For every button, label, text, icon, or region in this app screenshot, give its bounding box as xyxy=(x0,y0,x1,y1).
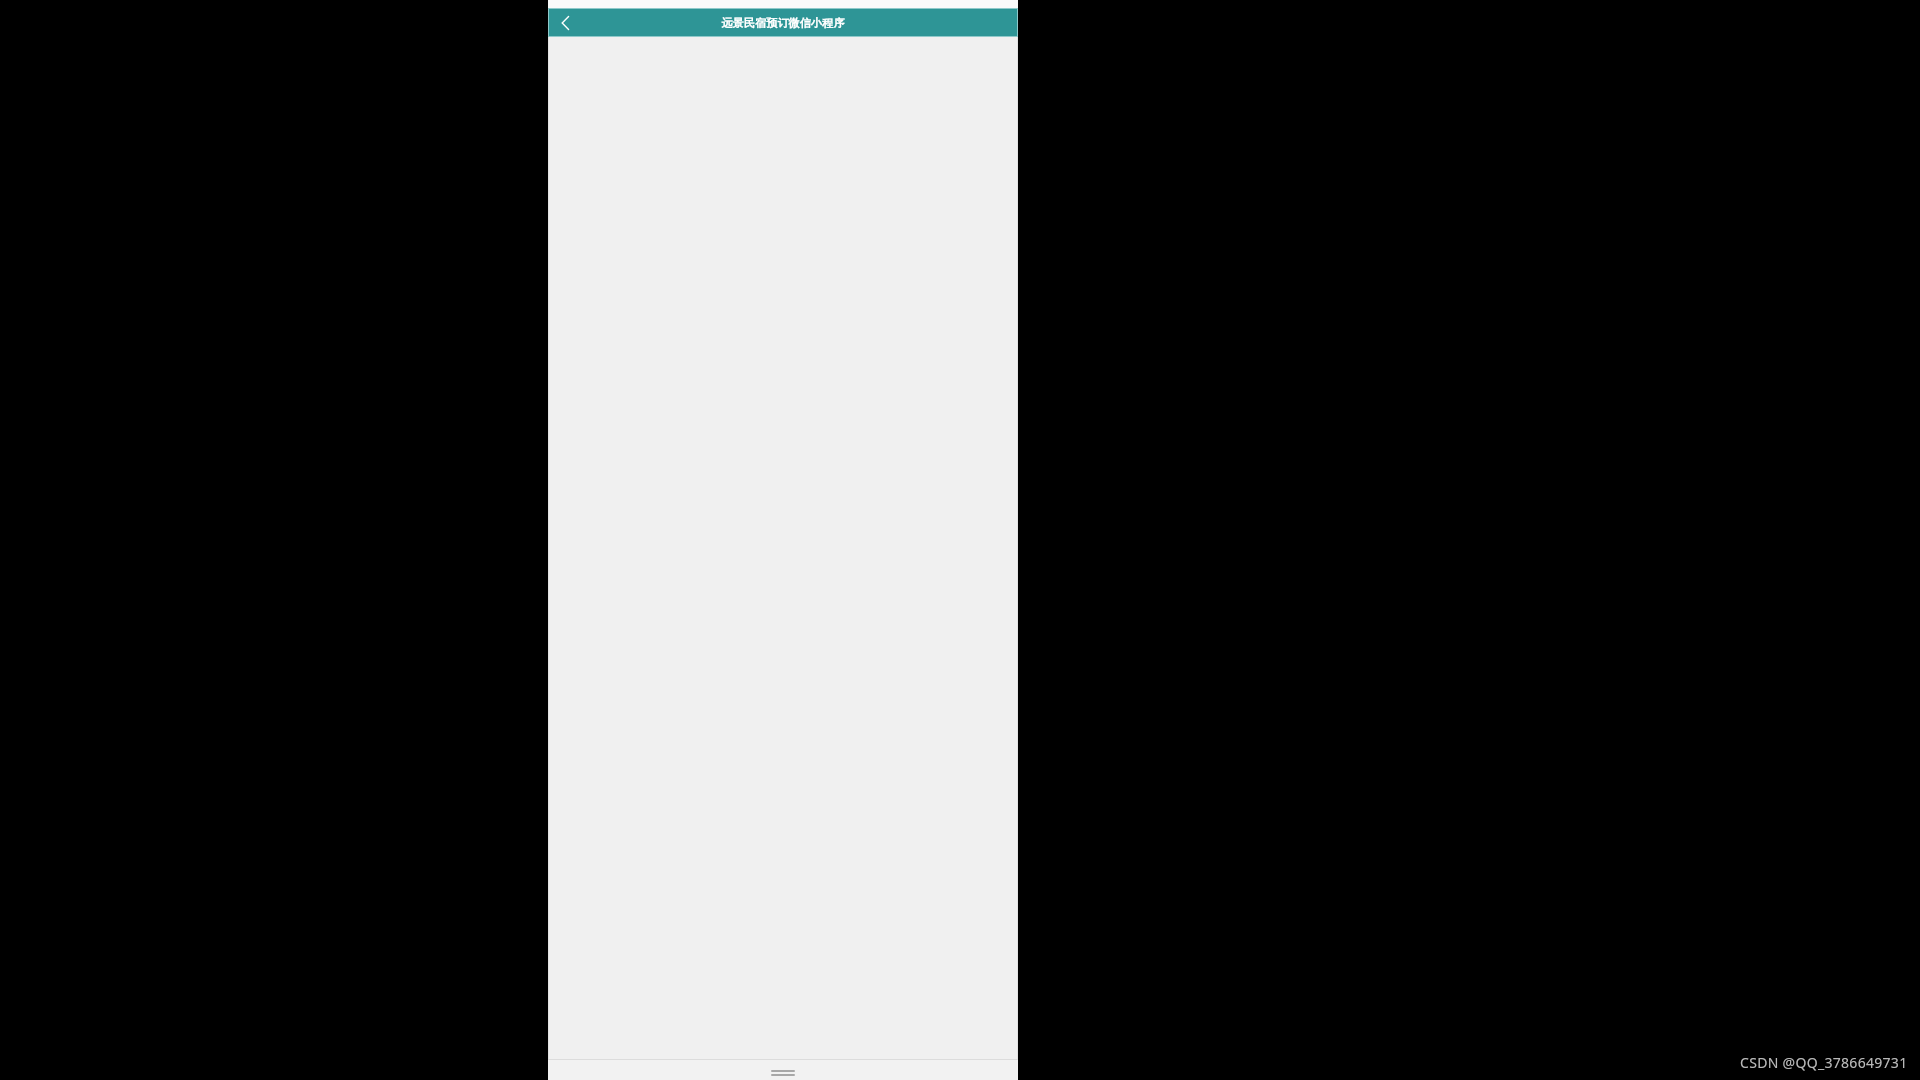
button[interactable]: Home xyxy=(771,1070,795,1076)
staticText: CSDN @QQ_3786649731 xyxy=(1740,1053,1908,1072)
staticText: 远景民宿预订微信小程序 xyxy=(549,16,1017,30)
button[interactable]: Back xyxy=(549,9,581,36)
